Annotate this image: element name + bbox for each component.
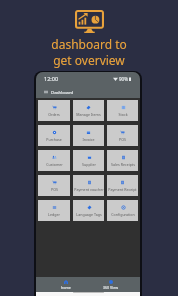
staticText: Manage Items [76,112,101,117]
button[interactable]: Payment Receipt [107,175,138,196]
button[interactable]: Customer [38,150,70,171]
staticText: Payment voucher [74,187,104,192]
staticText: Orders [48,112,60,117]
staticText: Stock [118,112,128,117]
staticText: POS [119,137,126,142]
staticText: Supplier [82,162,96,167]
staticText: POS [51,187,58,192]
button[interactable]: Orders [38,100,70,121]
button[interactable]: Payment voucher [73,175,104,196]
staticText: get overview [53,52,125,68]
button[interactable]: Configuration [107,200,138,221]
staticText: Invoice [82,137,95,142]
staticText: 12:00 [44,75,59,82]
button[interactable]: Stock [107,100,138,121]
staticText: Configuration [111,212,135,217]
button[interactable]: Sales Receipts [107,150,138,171]
staticText: home [61,285,71,290]
button[interactable]: 360 View [98,277,122,292]
button[interactable]: Language Tags [73,200,104,221]
button[interactable]: Manage Items [73,100,104,121]
staticText: Sales Receipts [111,162,135,167]
staticText: Customer [46,162,63,167]
button[interactable]: Open navigation menu [44,90,48,94]
button[interactable]: home [54,277,78,292]
staticText: Dashboard [51,89,74,95]
button[interactable]: Ledger [38,200,70,221]
staticText: Language Tags [76,212,102,217]
button[interactable]: Supplier [73,150,104,171]
button[interactable]: Invoice [73,125,104,146]
staticText: Payment Receipt [108,187,137,192]
staticText: 360 View [103,285,118,290]
staticText: 90% [119,76,128,82]
staticText: Purchase [46,137,62,142]
staticText: Ledger [48,212,60,217]
button[interactable]: Purchase [38,125,70,146]
staticText: dashboard to [51,36,127,52]
button[interactable]: POS [38,175,70,196]
button[interactable]: POS [107,125,138,146]
